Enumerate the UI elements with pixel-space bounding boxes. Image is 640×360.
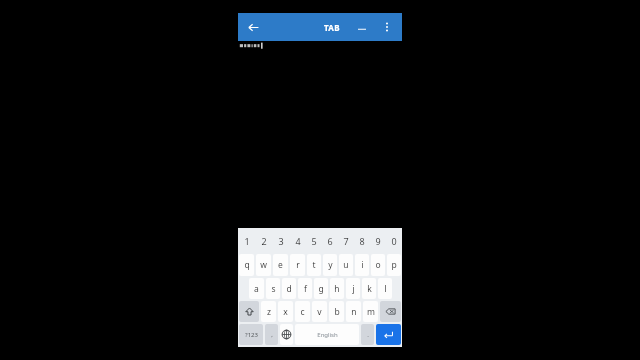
button[interactable]: r <box>290 254 305 276</box>
staticText: w <box>260 259 267 271</box>
button[interactable]: Backspace <box>380 301 401 322</box>
button[interactable]: m <box>363 301 378 322</box>
button[interactable]: English <box>295 324 359 345</box>
button[interactable]: 3 <box>273 230 289 252</box>
button[interactable]: 2 <box>256 230 272 252</box>
staticText: q <box>244 259 250 271</box>
staticText: t <box>312 259 316 271</box>
staticText: 2 <box>261 235 267 247</box>
staticText: i <box>361 259 364 271</box>
button[interactable]: i <box>355 254 369 276</box>
staticText: . <box>367 331 369 339</box>
staticText: 9 <box>375 235 381 247</box>
button[interactable]: s <box>266 278 280 299</box>
button[interactable]: 6 <box>322 230 337 252</box>
staticText: English <box>317 331 338 339</box>
staticText: 1 <box>244 235 250 247</box>
staticText: s <box>271 283 276 295</box>
button[interactable]: f <box>298 278 312 299</box>
button[interactable]: x <box>278 301 293 322</box>
button[interactable]: w <box>256 254 271 276</box>
button[interactable]: 1 <box>239 230 255 252</box>
staticText: e <box>278 259 283 271</box>
staticText: o <box>375 259 381 271</box>
staticText: , <box>271 331 273 339</box>
staticText: c <box>300 306 305 318</box>
button[interactable]: q <box>239 254 254 276</box>
button[interactable]: ?123 <box>239 324 263 345</box>
button[interactable]: c <box>295 301 310 322</box>
staticText: g <box>318 283 324 295</box>
staticText: p <box>391 259 397 271</box>
staticText: m <box>367 306 375 318</box>
button[interactable]: j <box>346 278 360 299</box>
staticText: n <box>351 306 357 318</box>
button[interactable]: d <box>282 278 296 299</box>
button[interactable]: y <box>323 254 337 276</box>
button[interactable]: v <box>312 301 327 322</box>
button[interactable]: 8 <box>354 230 369 252</box>
staticText: ?123 <box>245 331 258 339</box>
button[interactable]: Enter <box>376 324 401 345</box>
button[interactable]: z <box>261 301 276 322</box>
button[interactable]: n <box>346 301 361 322</box>
staticText: 4 <box>295 235 301 247</box>
staticText: a <box>254 283 259 295</box>
staticText: 3 <box>278 235 284 247</box>
staticText: 0 <box>391 235 397 247</box>
staticText: r <box>296 259 300 271</box>
button[interactable]: a <box>249 278 264 299</box>
staticText: l <box>384 283 387 295</box>
staticText: h <box>334 283 340 295</box>
button[interactable]: 4 <box>290 230 305 252</box>
button[interactable]: p <box>387 254 401 276</box>
staticText: b <box>334 306 340 318</box>
button[interactable]: , <box>265 324 278 345</box>
button[interactable]: Back <box>243 17 263 37</box>
button[interactable]: g <box>314 278 328 299</box>
staticText: x <box>283 306 288 318</box>
staticText: v <box>317 306 322 318</box>
staticText: j <box>352 283 355 295</box>
button[interactable]: . <box>361 324 374 345</box>
button[interactable]: e <box>273 254 288 276</box>
staticText: d <box>286 283 292 295</box>
button[interactable]: 7 <box>338 230 353 252</box>
staticText: 7 <box>343 235 349 247</box>
button[interactable]: 0 <box>386 230 401 252</box>
staticText: k <box>367 283 372 295</box>
staticText: z <box>267 306 271 318</box>
button[interactable]: o <box>371 254 385 276</box>
staticText: 6 <box>327 235 333 247</box>
button[interactable]: 9 <box>370 230 385 252</box>
button[interactable]: Minimize <box>353 18 371 36</box>
button[interactable]: u <box>339 254 353 276</box>
staticText: u <box>343 259 349 271</box>
button[interactable]: Change language <box>280 324 293 345</box>
staticText: 8 <box>359 235 365 247</box>
button[interactable]: k <box>362 278 376 299</box>
button[interactable]: More options <box>377 17 397 37</box>
staticText: f <box>304 283 307 295</box>
button[interactable]: Shift <box>239 301 259 322</box>
button[interactable]: t <box>307 254 321 276</box>
button[interactable]: l <box>378 278 392 299</box>
button[interactable]: 5 <box>306 230 321 252</box>
staticText: 5 <box>311 235 317 247</box>
button[interactable]: h <box>330 278 344 299</box>
button[interactable]: TAB <box>321 20 343 35</box>
button[interactable]: b <box>329 301 344 322</box>
staticText: y <box>328 259 333 271</box>
staticText: TAB <box>324 22 340 33</box>
button[interactable] <box>238 41 402 50</box>
